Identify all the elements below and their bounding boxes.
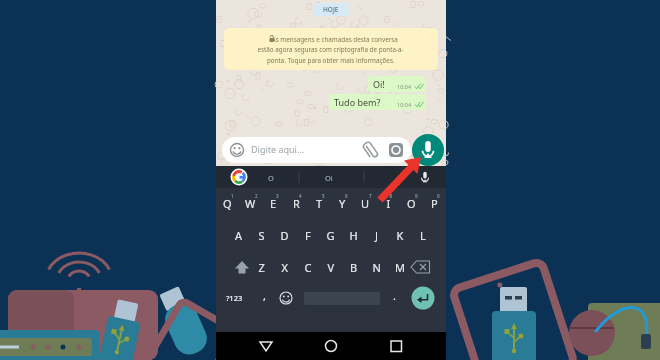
button[interactable]: Gravar mensagem de voz xyxy=(412,134,444,166)
button[interactable] xyxy=(222,137,411,163)
button[interactable] xyxy=(329,94,426,110)
button[interactable] xyxy=(368,76,426,92)
button[interactable] xyxy=(224,28,438,70)
button[interactable] xyxy=(313,3,349,16)
